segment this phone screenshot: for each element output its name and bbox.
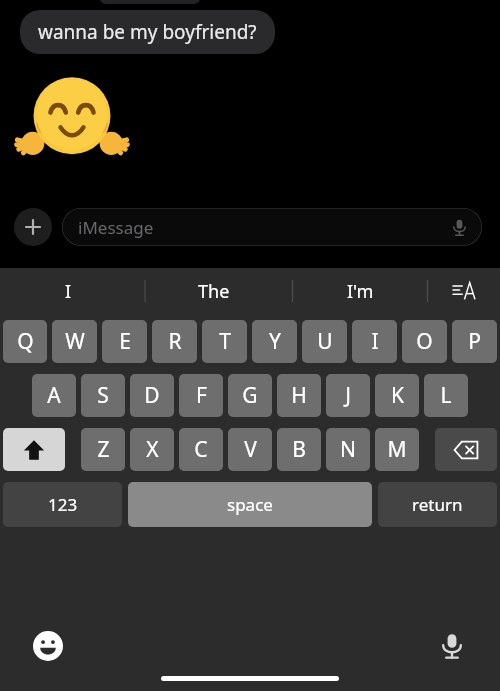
staticText: A xyxy=(47,381,61,410)
button[interactable]: Q xyxy=(3,320,47,363)
staticText: C xyxy=(194,435,208,464)
button[interactable]: return xyxy=(378,482,497,527)
staticText: N xyxy=(340,435,356,464)
button[interactable]: W xyxy=(52,320,97,363)
button[interactable]: iMessage xyxy=(62,208,482,246)
staticText: I xyxy=(65,279,72,304)
staticText: P xyxy=(468,327,481,356)
staticText: return xyxy=(412,493,463,516)
button[interactable]: V xyxy=(228,428,272,471)
button[interactable]: F xyxy=(179,374,223,417)
staticText: E xyxy=(119,327,131,356)
staticText: O xyxy=(416,327,433,356)
staticText: Y xyxy=(269,327,281,356)
staticText: J xyxy=(345,381,351,410)
button[interactable]: K xyxy=(375,374,419,417)
staticText: K xyxy=(391,381,404,410)
button[interactable]: space xyxy=(128,482,372,527)
staticText: H xyxy=(291,381,307,410)
button[interactable]: E xyxy=(102,320,147,363)
staticText: I'm xyxy=(347,279,374,304)
button[interactable]: The xyxy=(136,268,292,314)
button[interactable]: N xyxy=(326,428,370,471)
button[interactable]: H xyxy=(277,374,321,417)
button[interactable]: M xyxy=(375,428,419,471)
staticText: T xyxy=(219,327,231,356)
staticText: space xyxy=(227,493,273,516)
button[interactable]: I'm xyxy=(292,268,428,314)
staticText: X xyxy=(146,435,159,464)
staticText: I xyxy=(371,327,379,356)
staticText: W xyxy=(65,327,85,356)
button[interactable]: Z xyxy=(81,428,125,471)
button[interactable]: X xyxy=(130,428,174,471)
button[interactable]: G xyxy=(228,374,272,417)
staticText: The xyxy=(198,279,230,304)
staticText: 123 xyxy=(48,493,78,516)
staticText: F xyxy=(196,381,207,410)
staticText: iMessage xyxy=(78,216,154,239)
button[interactable]: I xyxy=(0,268,136,314)
button[interactable]: Dictation xyxy=(437,631,467,661)
button[interactable]: B xyxy=(277,428,321,471)
button[interactable]: J xyxy=(326,374,370,417)
button[interactable]: P xyxy=(452,320,497,363)
button[interactable]: D xyxy=(130,374,174,417)
button[interactable]: I xyxy=(352,320,397,363)
button[interactable]: Delete xyxy=(435,428,497,471)
button[interactable]: C xyxy=(179,428,223,471)
staticText: B xyxy=(292,435,306,464)
button[interactable]: L xyxy=(424,374,468,417)
button[interactable]: A xyxy=(32,374,76,417)
staticText: U xyxy=(317,327,333,356)
button[interactable]: U xyxy=(302,320,347,363)
button[interactable]: R xyxy=(152,320,197,363)
button[interactable]: T xyxy=(202,320,247,363)
staticText: V xyxy=(244,435,257,464)
button[interactable]: 123 xyxy=(3,482,122,527)
staticText: M xyxy=(387,435,407,464)
button[interactable]: Y xyxy=(252,320,297,363)
staticText: G xyxy=(242,381,258,410)
staticText: S xyxy=(97,381,109,410)
button[interactable]: Add attachment xyxy=(14,208,52,246)
staticText: Q xyxy=(17,327,34,356)
button[interactable]: O xyxy=(402,320,447,363)
button[interactable]: S xyxy=(81,374,125,417)
staticText: D xyxy=(144,381,160,410)
button[interactable]: Formatting xyxy=(428,268,500,314)
staticText: L xyxy=(440,381,452,410)
button[interactable]: wanna be my boyfriend? xyxy=(20,10,275,54)
staticText: wanna be my boyfriend? xyxy=(38,19,257,45)
staticText: R xyxy=(168,327,182,356)
button[interactable]: Shift xyxy=(3,428,65,471)
button[interactable]: Emoji xyxy=(33,631,63,661)
staticText: Z xyxy=(97,435,110,464)
